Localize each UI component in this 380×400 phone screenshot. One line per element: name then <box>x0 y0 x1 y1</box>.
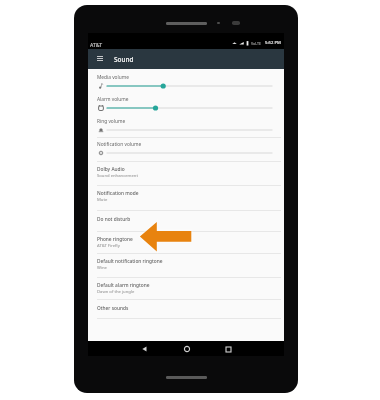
button[interactable]: Default notification ringtone <box>88 253 284 277</box>
button[interactable]: Open navigation menu <box>88 49 284 69</box>
staticText: Media volume <box>97 74 129 81</box>
button[interactable]: Ring volume <box>88 114 284 138</box>
staticText: Phone ringtone <box>97 236 133 243</box>
staticText: Notification volume <box>97 141 142 148</box>
staticText: Ring volume <box>97 118 126 125</box>
staticText: Notification mode <box>97 190 139 197</box>
staticText: VoLTE <box>251 41 262 46</box>
staticText: AT&T Firefly <box>97 243 120 249</box>
button[interactable]: Media volume <box>88 70 284 92</box>
staticText: Wine <box>97 265 107 271</box>
button[interactable]: Home <box>180 342 194 356</box>
staticText: Dolby Audio <box>97 166 125 173</box>
staticText: Do not disturb <box>97 216 131 223</box>
staticText: Other sounds <box>97 305 129 312</box>
staticText: Sound <box>114 55 134 64</box>
button[interactable]: Alarm volume <box>88 92 284 114</box>
button[interactable]: Notification volume <box>88 137 284 160</box>
staticText: AT&T <box>90 41 103 48</box>
button[interactable]: Default alarm ringtone <box>88 277 284 299</box>
button[interactable]: Notification mode <box>88 185 284 209</box>
button[interactable]: Open navigation menu <box>94 52 106 64</box>
staticText: Dawn of the jungle <box>97 289 135 295</box>
button[interactable]: Recent apps <box>221 342 235 356</box>
button[interactable]: Back <box>137 342 151 356</box>
button[interactable]: Dolby Audio <box>88 161 284 186</box>
button[interactable]: Other sounds <box>88 299 284 318</box>
button[interactable]: Do not disturb <box>88 210 284 231</box>
staticText: Sound enhancement <box>97 173 138 179</box>
button[interactable]: Phone ringtone <box>88 231 284 253</box>
staticText: 5:52 PM <box>265 40 281 46</box>
staticText: Default notification ringtone <box>97 258 163 265</box>
staticText: Alarm volume <box>97 96 129 103</box>
staticText: Mute <box>97 197 108 203</box>
staticText: Default alarm ringtone <box>97 282 150 289</box>
